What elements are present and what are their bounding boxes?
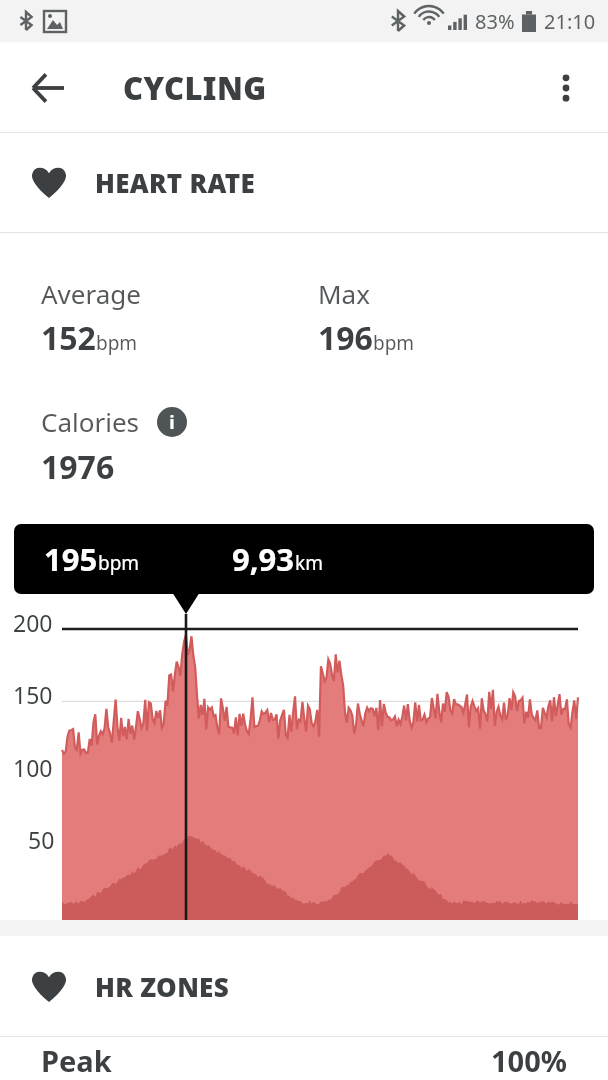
staticText: 100 [13, 752, 53, 783]
staticText: HR ZONES [95, 969, 229, 1004]
button[interactable]: HR ZONES [0, 936, 608, 1036]
button[interactable]: 195 [14, 524, 594, 594]
staticText: 21:10 [544, 8, 596, 35]
staticText: Calories [41, 404, 140, 439]
staticText: bpm [98, 550, 140, 576]
staticText: km [295, 550, 323, 576]
staticText: 50 [28, 824, 55, 855]
staticText: HEART RATE [95, 165, 256, 200]
button[interactable]: Back [16, 56, 80, 120]
staticText: 83% [475, 8, 515, 35]
button[interactable]: Calories info [157, 407, 187, 437]
staticText: CYCLING [123, 67, 267, 109]
staticText: bpm [96, 330, 138, 356]
staticText: 9,93 [232, 538, 295, 580]
staticText: 100% [491, 1041, 567, 1080]
button[interactable]: Peak [41, 1037, 567, 1080]
staticText: Average [41, 276, 141, 311]
staticText: 1976 [41, 445, 115, 489]
staticText: i [169, 410, 175, 435]
button[interactable]: HEART RATE [0, 133, 608, 232]
staticText: 150 [13, 679, 53, 710]
staticText: 200 [13, 607, 53, 638]
staticText: 196 [318, 316, 373, 360]
staticText: 195 [44, 538, 98, 580]
staticText: 152 [41, 316, 96, 360]
staticText: Max [318, 276, 370, 311]
staticText: Peak [41, 1041, 112, 1080]
button[interactable]: More options [536, 58, 596, 118]
staticText: bpm [373, 330, 415, 356]
